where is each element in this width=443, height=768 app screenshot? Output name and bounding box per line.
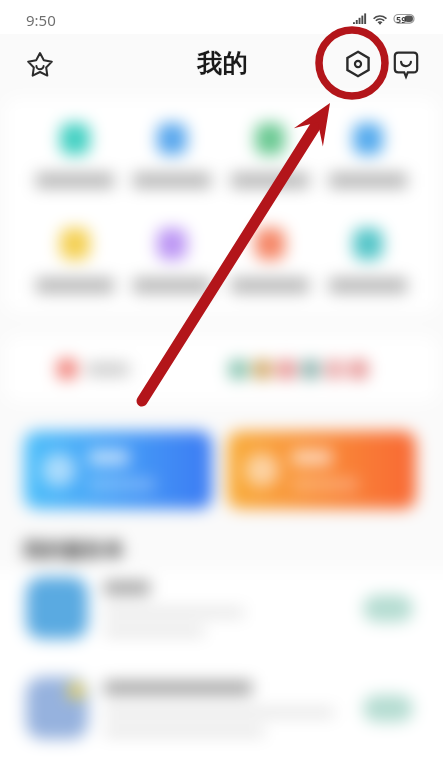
other: 我的评价表 [231, 278, 309, 293]
button[interactable]: 我的卡包表 [319, 123, 417, 188]
other: My services [57, 359, 77, 379]
staticText: 我的服务单 [23, 538, 123, 563]
button[interactable]: 我的评价表 [221, 228, 319, 293]
button[interactable]: Feedback [388, 46, 424, 82]
button[interactable]: Favorites [22, 47, 58, 83]
other: 我的钱包表 [231, 173, 309, 188]
other: 实名认证表 [36, 173, 114, 188]
button[interactable] [0, 568, 443, 648]
button[interactable]: 我的足迹表 [123, 228, 221, 293]
button[interactable]: 我的订单表 [123, 123, 221, 188]
button[interactable] [227, 431, 416, 509]
staticText: 59 [396, 13, 407, 25]
button[interactable] [24, 431, 212, 509]
button[interactable]: 实名认证表 [26, 123, 123, 188]
button[interactable] [0, 668, 443, 748]
staticText: 我的 [197, 48, 247, 79]
button[interactable]: 联系客服表 [319, 228, 417, 293]
button[interactable]: 我的收藏表 [26, 228, 123, 293]
button[interactable]: My services [5, 336, 438, 402]
button[interactable]: 我的钱包表 [221, 123, 319, 188]
other: 我的足迹表 [133, 278, 211, 293]
button[interactable]: Settings [340, 46, 376, 82]
staticText: 9:50 [26, 10, 56, 30]
other: 我的订单表 [133, 173, 211, 188]
other: 我的卡包表 [329, 173, 407, 188]
other: 联系客服表 [329, 278, 407, 293]
other: 我的收藏表 [36, 278, 114, 293]
